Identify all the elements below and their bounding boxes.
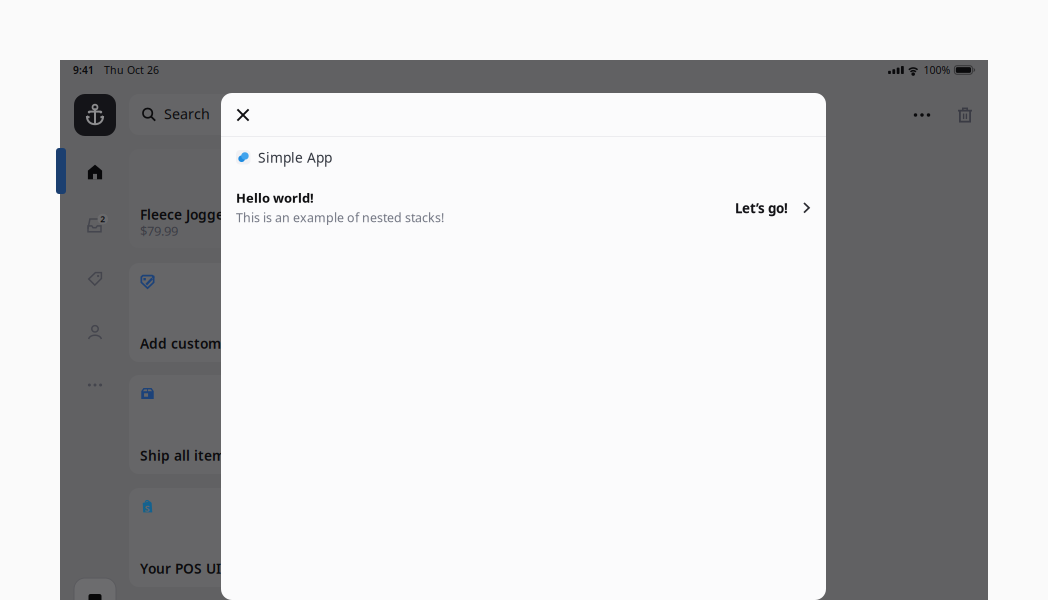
staticText: Add custom item <box>140 334 256 353</box>
button[interactable]: Home <box>75 157 115 187</box>
button[interactable]: Search <box>129 94 559 135</box>
staticText: 100% <box>923 63 950 77</box>
staticText: Search <box>164 104 210 123</box>
button[interactable]: Hello world! <box>236 189 811 229</box>
staticText: Fleece Jogger <box>140 205 230 224</box>
button[interactable]: Products <box>75 264 115 294</box>
button[interactable]: Your POS UI <box>129 488 559 587</box>
staticText: 9:41 <box>73 63 94 77</box>
button[interactable]: App home <box>74 94 116 136</box>
staticText: Ship all items <box>140 446 232 465</box>
button[interactable]: Close <box>225 97 261 133</box>
button[interactable]: Customers <box>75 318 115 348</box>
staticText: Your POS UI <box>140 559 221 578</box>
button[interactable]: Inbox, 2 unread <box>75 210 115 240</box>
button[interactable]: More <box>75 370 115 400</box>
button[interactable]: Delete <box>950 100 980 130</box>
button[interactable]: Point of sale <box>74 578 116 600</box>
staticText: Simple App <box>258 148 332 167</box>
button[interactable]: Add custom item <box>129 263 559 362</box>
staticText: Let’s go! <box>735 199 788 217</box>
staticText: $79.99 <box>140 222 178 240</box>
staticText: Thu Oct 26 <box>104 63 159 77</box>
staticText: This is an example of nested stacks! <box>236 209 444 226</box>
staticText: Hello world! <box>236 189 314 207</box>
button[interactable]: Ship all items <box>129 375 559 474</box>
staticText: S <box>145 502 150 514</box>
button[interactable]: More options <box>907 100 937 130</box>
staticText: 2 <box>100 213 105 225</box>
button[interactable]: Fleece Jogger, $79.99 <box>129 149 559 248</box>
